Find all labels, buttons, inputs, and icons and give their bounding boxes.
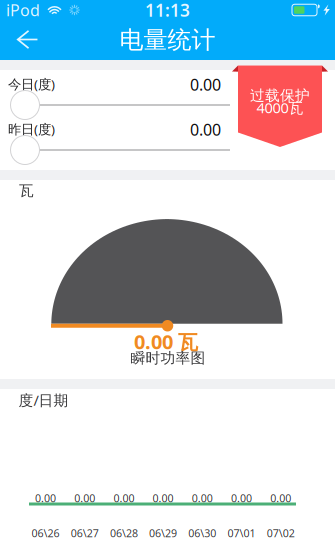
staticText: 过载保护 <box>250 86 310 104</box>
button[interactable]: Back <box>6 19 50 59</box>
staticText: 昨日(度) <box>8 120 55 138</box>
staticText: 0.00 <box>190 119 221 140</box>
staticText: 度/日期 <box>18 390 68 410</box>
staticText: 0.00 <box>74 491 95 505</box>
staticText: 07\02 <box>267 526 295 540</box>
staticText: 06\29 <box>149 526 177 540</box>
staticText: 今日(度) <box>8 75 55 93</box>
staticText: 06\28 <box>110 526 138 540</box>
staticText: 06\30 <box>188 526 216 540</box>
staticText: 06\27 <box>71 526 99 540</box>
staticText: 电量统计 <box>119 25 215 55</box>
staticText: 0.00 <box>190 74 221 95</box>
staticText: 06\26 <box>31 526 59 540</box>
staticText: 11:13 <box>145 0 190 21</box>
staticText: 0.00 瓦 <box>134 328 198 355</box>
staticText: 07\01 <box>227 526 255 540</box>
staticText: 0.00 <box>192 491 213 505</box>
staticText: iPod <box>6 0 40 21</box>
staticText: 0.00 <box>35 491 56 505</box>
staticText: 0.00 <box>270 491 291 505</box>
staticText: 4000瓦 <box>256 98 303 117</box>
staticText: 0.00 <box>113 491 134 505</box>
staticText: 0.00 <box>231 491 252 505</box>
staticText: 瓦 <box>19 181 34 199</box>
staticText: 0.00 <box>153 491 174 505</box>
staticText: 瞬时功率图 <box>130 349 205 367</box>
